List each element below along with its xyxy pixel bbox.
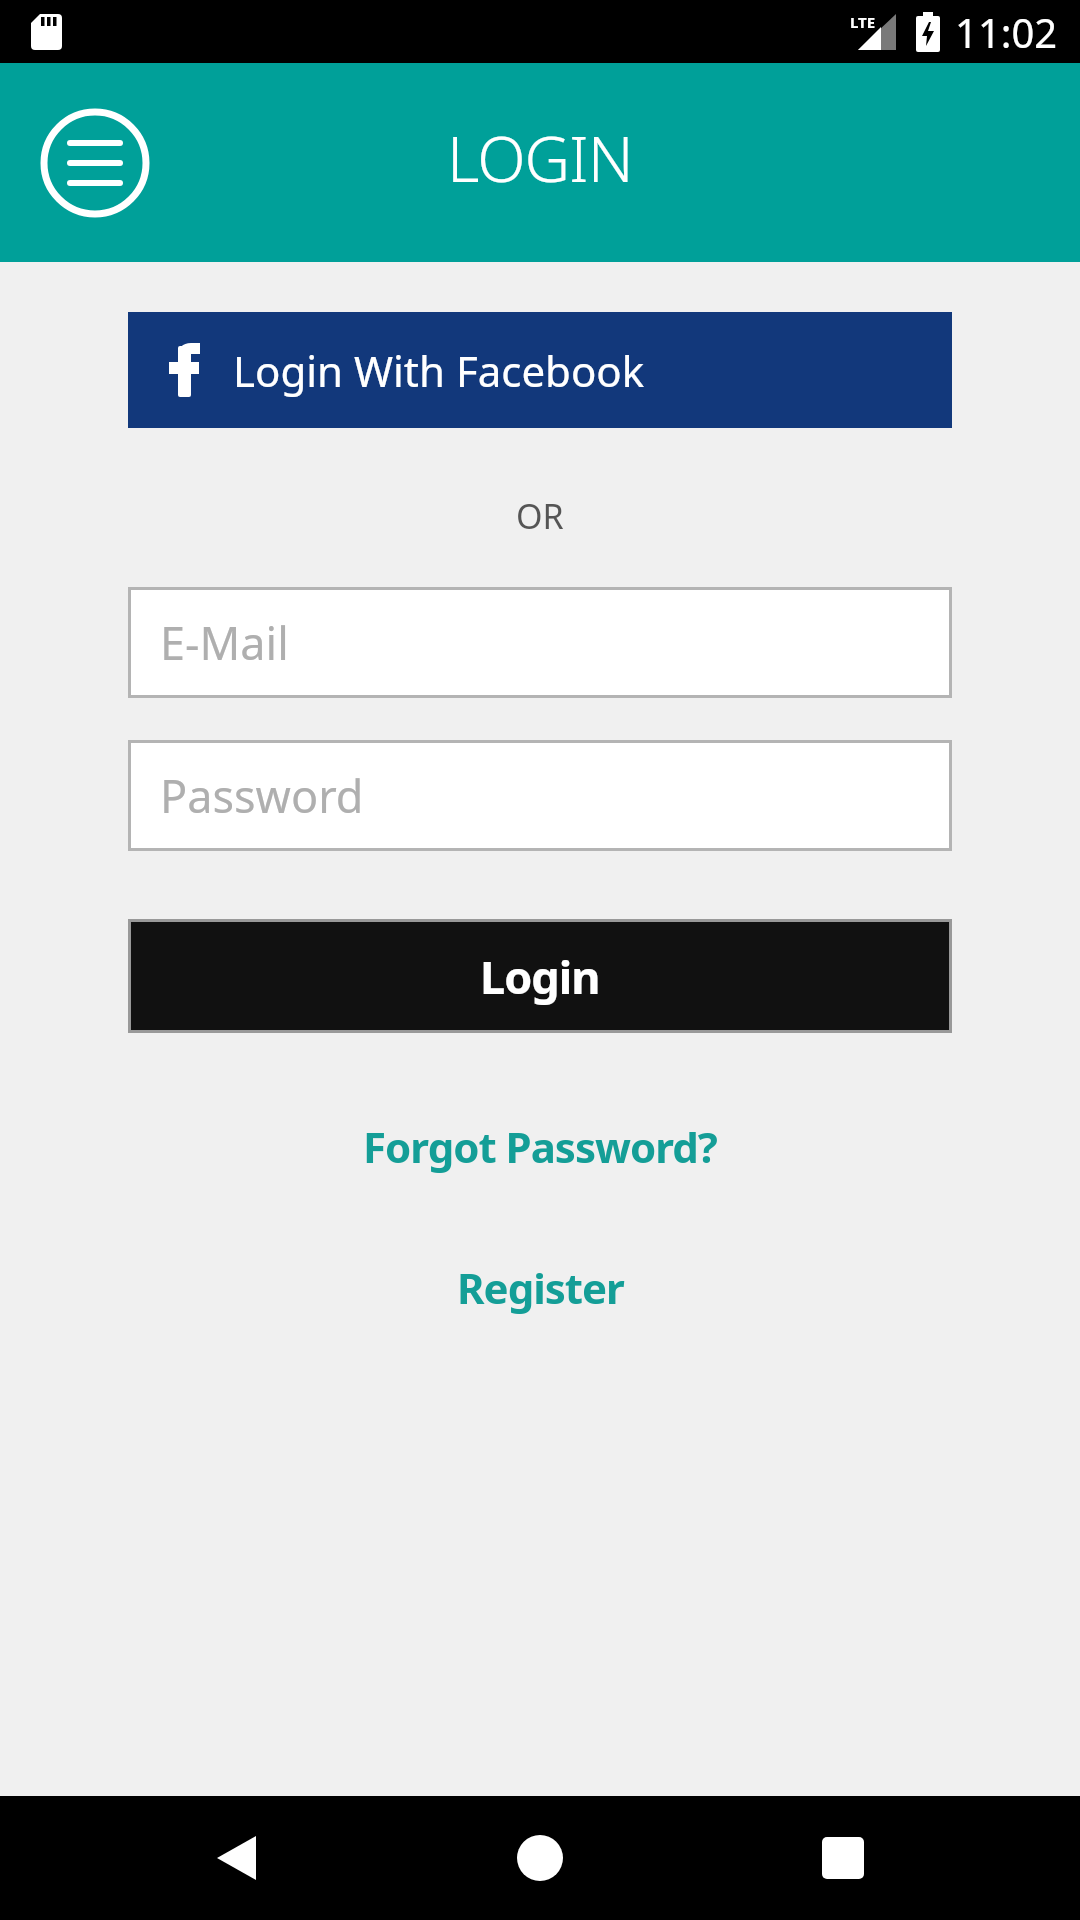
staticText: LOGIN xyxy=(447,115,633,201)
button[interactable]: Login With Facebook xyxy=(128,312,952,428)
staticText: Forgot Password? xyxy=(363,1118,717,1175)
staticText: OR xyxy=(516,493,564,539)
staticText: LTE xyxy=(850,12,876,32)
button[interactable]: Register xyxy=(457,1247,624,1327)
button[interactable] xyxy=(822,1837,864,1879)
button[interactable]: Forgot Password? xyxy=(363,1106,717,1186)
button[interactable] xyxy=(215,1834,259,1882)
button[interactable] xyxy=(517,1835,563,1881)
button[interactable]: Password xyxy=(128,740,952,851)
staticText: Register xyxy=(457,1259,624,1316)
button[interactable]: Login xyxy=(128,919,952,1033)
staticText: Password xyxy=(160,765,364,826)
button[interactable] xyxy=(41,109,149,217)
staticText: E-Mail xyxy=(160,612,289,673)
button[interactable]: E-Mail xyxy=(128,587,952,698)
staticText: Login xyxy=(480,946,600,1007)
staticText: Login With Facebook xyxy=(233,342,645,399)
staticText: 11:02 xyxy=(955,5,1058,59)
